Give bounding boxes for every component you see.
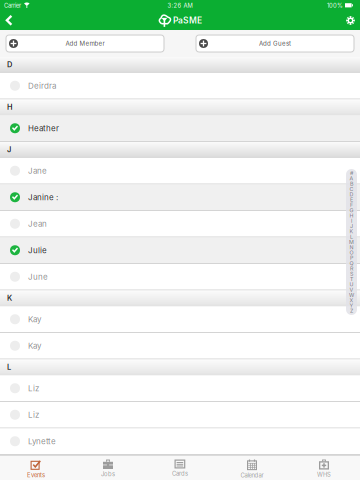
staticText: Jane xyxy=(28,166,47,176)
button[interactable]: Deirdra xyxy=(0,73,360,99)
staticText: Calendar xyxy=(240,472,263,479)
staticText: WHS xyxy=(317,471,331,478)
staticText: Heather xyxy=(28,123,59,133)
button[interactable]: Settings xyxy=(326,11,360,30)
staticText: G xyxy=(349,207,353,213)
button[interactable]: Cards xyxy=(144,455,216,480)
button[interactable]: Add Guest xyxy=(196,35,354,52)
staticText: B xyxy=(350,180,353,187)
button[interactable]: Calendar xyxy=(216,455,288,480)
staticText: R xyxy=(350,265,353,272)
staticText: Liz xyxy=(28,410,39,420)
staticText: 100% xyxy=(327,2,343,9)
staticText: D xyxy=(349,191,353,198)
button[interactable]: June xyxy=(0,264,360,290)
staticText: Kay xyxy=(28,341,41,351)
staticText: Kay xyxy=(28,314,41,324)
staticText: V xyxy=(349,286,353,293)
button[interactable]: Jobs xyxy=(72,455,144,480)
staticText: Add Member xyxy=(65,40,104,47)
staticText: Cards xyxy=(172,470,188,477)
staticText: M xyxy=(349,239,354,245)
staticText: P xyxy=(350,255,353,261)
button[interactable]: WHS xyxy=(288,455,360,480)
staticText: D xyxy=(7,60,12,69)
staticText: Z xyxy=(350,308,353,314)
staticText: L xyxy=(7,362,11,371)
staticText: J xyxy=(7,145,11,154)
staticText: N xyxy=(349,244,353,251)
button[interactable]: Add Member xyxy=(6,35,164,52)
staticText: K xyxy=(7,293,12,302)
staticText: T xyxy=(350,276,353,282)
staticText: June xyxy=(28,272,48,282)
staticText: Deirdra xyxy=(28,81,56,91)
button[interactable]: Liz xyxy=(0,402,360,428)
button[interactable]: Back xyxy=(0,11,34,30)
button[interactable]: Kay xyxy=(0,333,360,359)
staticText: O xyxy=(349,249,353,256)
staticText: Janine : xyxy=(28,192,58,202)
staticText: PaSME xyxy=(173,15,202,26)
staticText: A xyxy=(349,175,353,182)
button[interactable]: Jean xyxy=(0,211,360,237)
staticText: H xyxy=(7,102,13,111)
staticText: E xyxy=(350,196,353,203)
staticText: Jobs xyxy=(101,471,115,478)
staticText: L xyxy=(350,233,353,240)
button[interactable]: Kay xyxy=(0,306,360,333)
staticText: 3:26 AM xyxy=(167,2,192,9)
staticText: Events xyxy=(27,472,45,479)
button[interactable]: Events xyxy=(0,455,72,480)
staticText: Jean xyxy=(28,219,47,229)
staticText: C xyxy=(349,186,353,192)
staticText: Liz xyxy=(28,383,39,393)
staticText: Q xyxy=(349,260,353,266)
staticText: S xyxy=(350,271,353,277)
staticText: K xyxy=(349,228,353,235)
staticText: F xyxy=(350,202,353,208)
staticText: # xyxy=(350,170,353,176)
staticText: X xyxy=(349,297,353,304)
button[interactable]: Janine : xyxy=(0,184,360,211)
staticText: Lynette xyxy=(28,436,56,446)
button[interactable]: Liz xyxy=(0,375,360,402)
staticText: Add Guest xyxy=(259,40,291,47)
button[interactable]: Section index xyxy=(346,169,357,315)
staticText: I xyxy=(351,218,352,224)
staticText: W xyxy=(349,292,354,298)
staticText: Y xyxy=(349,302,353,309)
staticText: J xyxy=(350,223,353,229)
staticText: Julie xyxy=(28,245,47,255)
staticText: Carrier xyxy=(4,2,21,9)
button[interactable]: Heather xyxy=(0,115,360,142)
button[interactable]: Julie xyxy=(0,237,360,264)
button[interactable]: Jane xyxy=(0,158,360,184)
staticText: H xyxy=(349,212,353,219)
staticText: U xyxy=(349,281,353,288)
button[interactable]: Lynette xyxy=(0,428,360,455)
